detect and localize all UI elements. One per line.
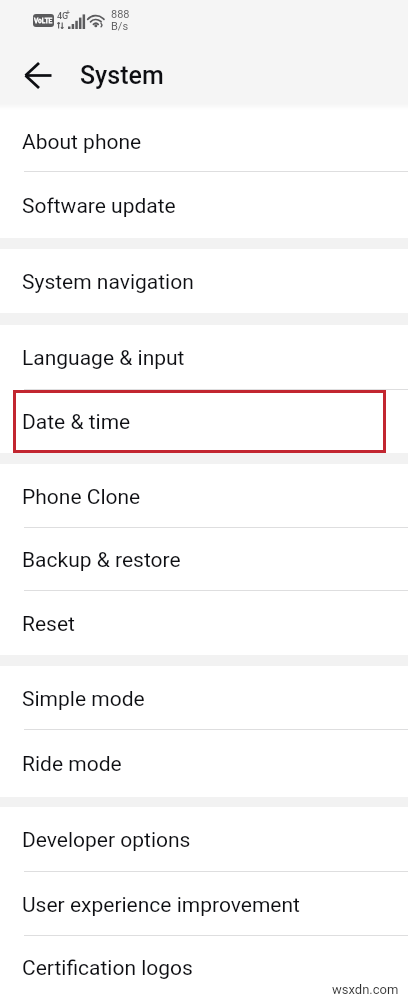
staticText: Backup & restore	[22, 548, 181, 573]
staticText: System navigation	[22, 270, 194, 295]
staticText: Phone Clone	[22, 485, 141, 510]
staticText: Simple mode	[22, 687, 145, 712]
button[interactable]: Developer options	[0, 807, 408, 872]
staticText: B/s	[111, 20, 129, 33]
staticText: User experience improvement	[22, 893, 300, 918]
staticText: System	[80, 61, 164, 90]
staticText: Reset	[22, 612, 75, 637]
button[interactable]: Back	[13, 50, 63, 100]
staticText: About phone	[22, 130, 142, 155]
button[interactable]: About phone	[0, 110, 408, 172]
button[interactable]: Date & time	[0, 390, 408, 453]
staticText: 888	[111, 8, 130, 21]
button[interactable]: Language & input	[0, 325, 408, 390]
staticText: Ride mode	[22, 752, 122, 777]
staticText: Language & input	[22, 346, 185, 371]
staticText: 4G	[57, 11, 69, 22]
button[interactable]: Reset	[0, 591, 408, 655]
staticText: wsxdn.com	[332, 982, 399, 997]
button[interactable]: Software update	[0, 172, 408, 238]
staticText: Developer options	[22, 828, 191, 853]
staticText: Software update	[22, 194, 176, 219]
staticText: Certification logos	[22, 956, 193, 981]
button[interactable]: System navigation	[0, 249, 408, 313]
button[interactable]: User experience improvement	[0, 872, 408, 936]
button[interactable]: Backup & restore	[0, 528, 408, 591]
button[interactable]: Ride mode	[0, 730, 408, 797]
staticText: Date & time	[22, 410, 131, 435]
staticText: VoLTE	[34, 17, 53, 25]
button[interactable]: Certification logos	[0, 936, 408, 999]
button[interactable]: Phone Clone	[0, 464, 408, 528]
staticText: +	[66, 9, 70, 17]
button[interactable]: Simple mode	[0, 666, 408, 730]
